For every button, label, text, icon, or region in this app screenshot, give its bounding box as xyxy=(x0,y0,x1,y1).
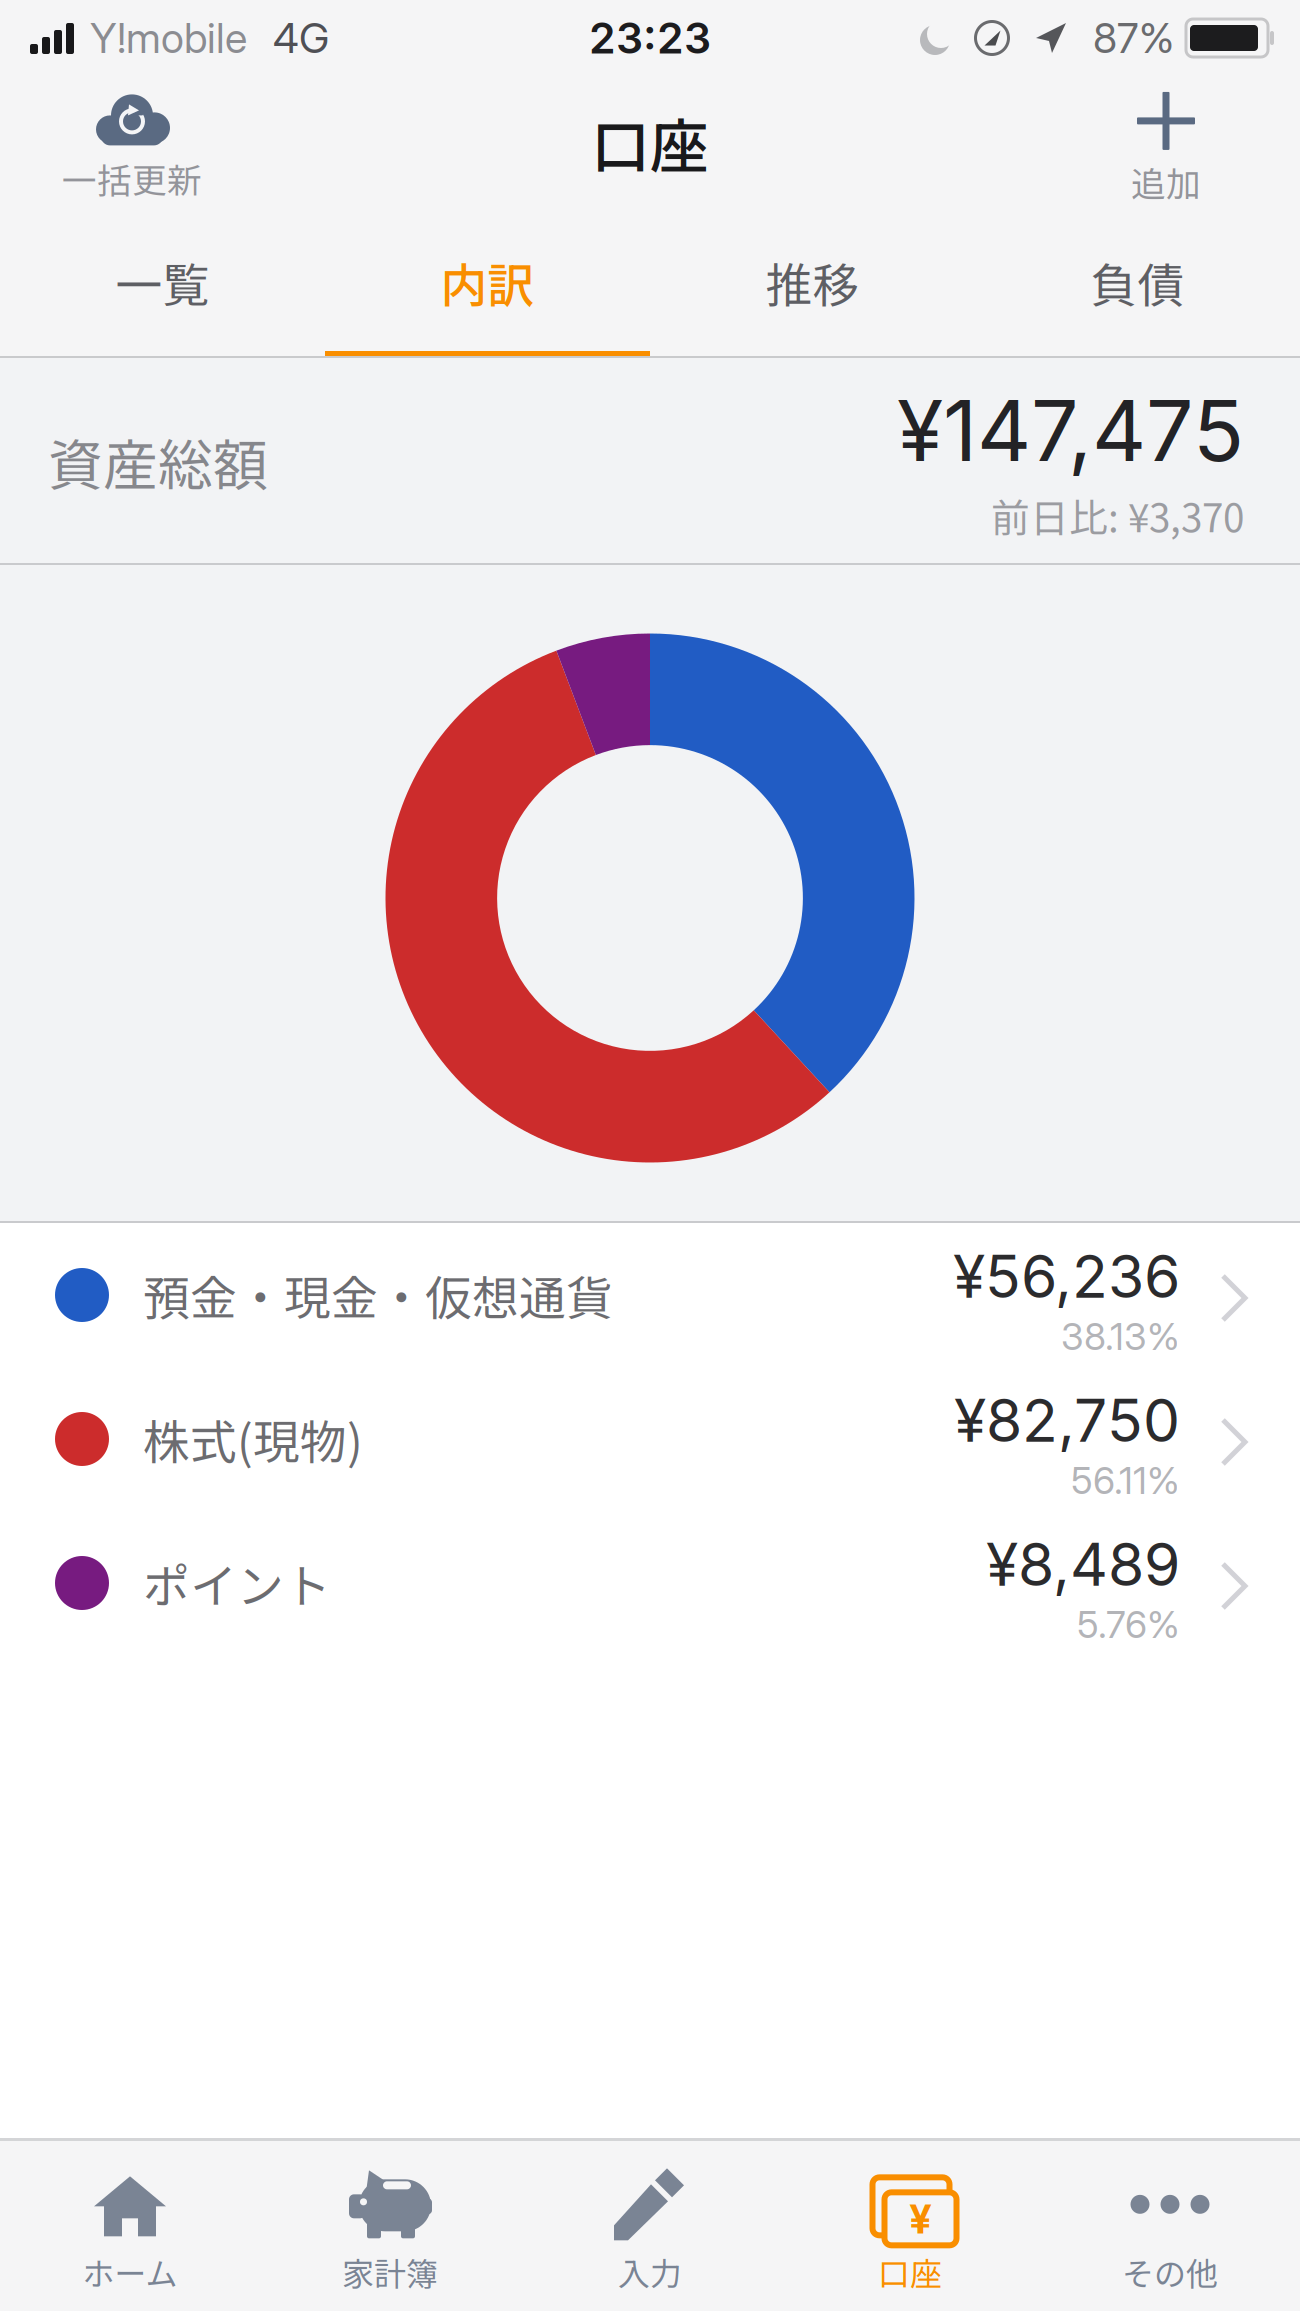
button[interactable]: 株式(現物) xyxy=(0,1367,1300,1511)
staticText: 87% xyxy=(1093,13,1174,63)
staticText: 推移 xyxy=(765,248,859,316)
staticText: 口座 xyxy=(591,100,709,185)
button[interactable]: 内訳 xyxy=(325,221,650,358)
staticText: ポイント xyxy=(143,1549,331,1617)
staticText: 38.13% xyxy=(1061,1314,1180,1359)
button[interactable]: 一括更新 xyxy=(42,83,222,213)
button[interactable]: ¥ xyxy=(780,2138,1040,2311)
staticText: 23:23 xyxy=(589,12,711,64)
staticText: 株式(現物) xyxy=(143,1405,363,1473)
button[interactable]: 家計簿 xyxy=(260,2138,520,2311)
staticText: 口座 xyxy=(878,2249,942,2295)
staticText: 5.76% xyxy=(1077,1602,1180,1647)
staticText: 入力 xyxy=(618,2249,682,2295)
staticText: Y!mobile xyxy=(90,13,247,63)
staticText: ¥82,750 xyxy=(954,1385,1180,1456)
staticText: 追加 xyxy=(1131,157,1201,207)
staticText: 内訳 xyxy=(440,248,534,316)
staticText: 負債 xyxy=(1090,248,1184,316)
staticText: ホーム xyxy=(82,2249,177,2295)
staticText: ¥56,236 xyxy=(953,1241,1180,1312)
staticText: 4G xyxy=(273,13,329,63)
button[interactable]: 入力 xyxy=(520,2138,780,2311)
button[interactable]: ポイント xyxy=(0,1511,1300,1655)
button[interactable]: 預金・現金・仮想通貨 xyxy=(0,1223,1300,1367)
staticText: 一括更新 xyxy=(62,153,202,204)
staticText: 家計簿 xyxy=(342,2249,438,2295)
staticText: ¥147,475 xyxy=(897,380,1244,481)
staticText: 56.11% xyxy=(1071,1458,1180,1503)
staticText: 一覧 xyxy=(115,248,209,316)
button[interactable]: その他 xyxy=(1040,2138,1300,2311)
staticText: 前日比: ¥3,370 xyxy=(991,487,1244,543)
staticText: ¥ xyxy=(909,2195,931,2243)
staticText: ¥8,489 xyxy=(986,1529,1180,1600)
staticText: その他 xyxy=(1122,2249,1218,2295)
button[interactable]: 推移 xyxy=(650,221,975,358)
staticText: 預金・現金・仮想通貨 xyxy=(143,1261,613,1329)
button[interactable]: ホーム xyxy=(0,2138,260,2311)
button[interactable]: 負債 xyxy=(975,221,1300,358)
button[interactable]: 追加 xyxy=(1076,83,1256,213)
staticText: 資産総額 xyxy=(48,422,268,501)
button[interactable]: 一覧 xyxy=(0,221,325,358)
